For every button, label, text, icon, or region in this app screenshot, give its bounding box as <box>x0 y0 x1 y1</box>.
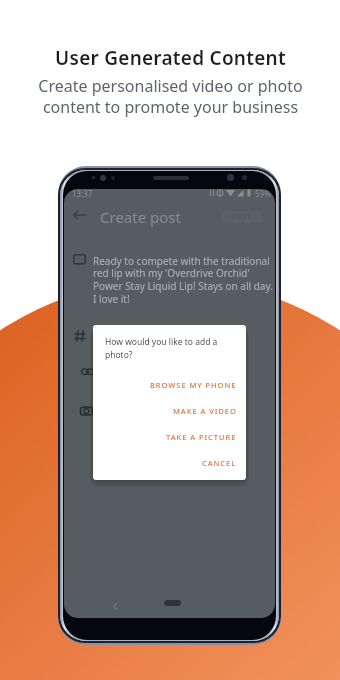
staticText: Create post <box>100 207 181 227</box>
staticText: Ready to compete with the traditional re… <box>93 254 273 306</box>
staticText: MAKE A VIDEO <box>173 406 237 416</box>
staticText: 59% <box>255 189 271 199</box>
button[interactable]: BROWSE MY PHONE <box>105 372 237 398</box>
button[interactable]: Home <box>164 600 181 606</box>
staticText: TAKE A PICTURE <box>166 432 237 442</box>
staticText: How would you like to add a photo? <box>105 336 218 361</box>
staticText: 13:37 <box>72 189 93 199</box>
staticText: CANCEL <box>202 458 237 468</box>
button[interactable]: Add hashtag <box>73 329 87 343</box>
button[interactable]: MAKE A VIDEO <box>105 398 237 424</box>
button[interactable]: Back <box>71 206 89 224</box>
button[interactable]: Add photo <box>80 403 94 417</box>
staticText: Create personalised video or photo conte… <box>38 75 303 118</box>
button[interactable]: Add link <box>81 365 95 379</box>
button[interactable]: TAKE A PICTURE <box>105 424 237 450</box>
button[interactable]: CANCEL <box>105 450 237 476</box>
staticText: User Generated Content <box>55 45 286 71</box>
staticText: BROWSE MY PHONE <box>150 380 237 390</box>
button[interactable]: Back <box>108 599 122 613</box>
